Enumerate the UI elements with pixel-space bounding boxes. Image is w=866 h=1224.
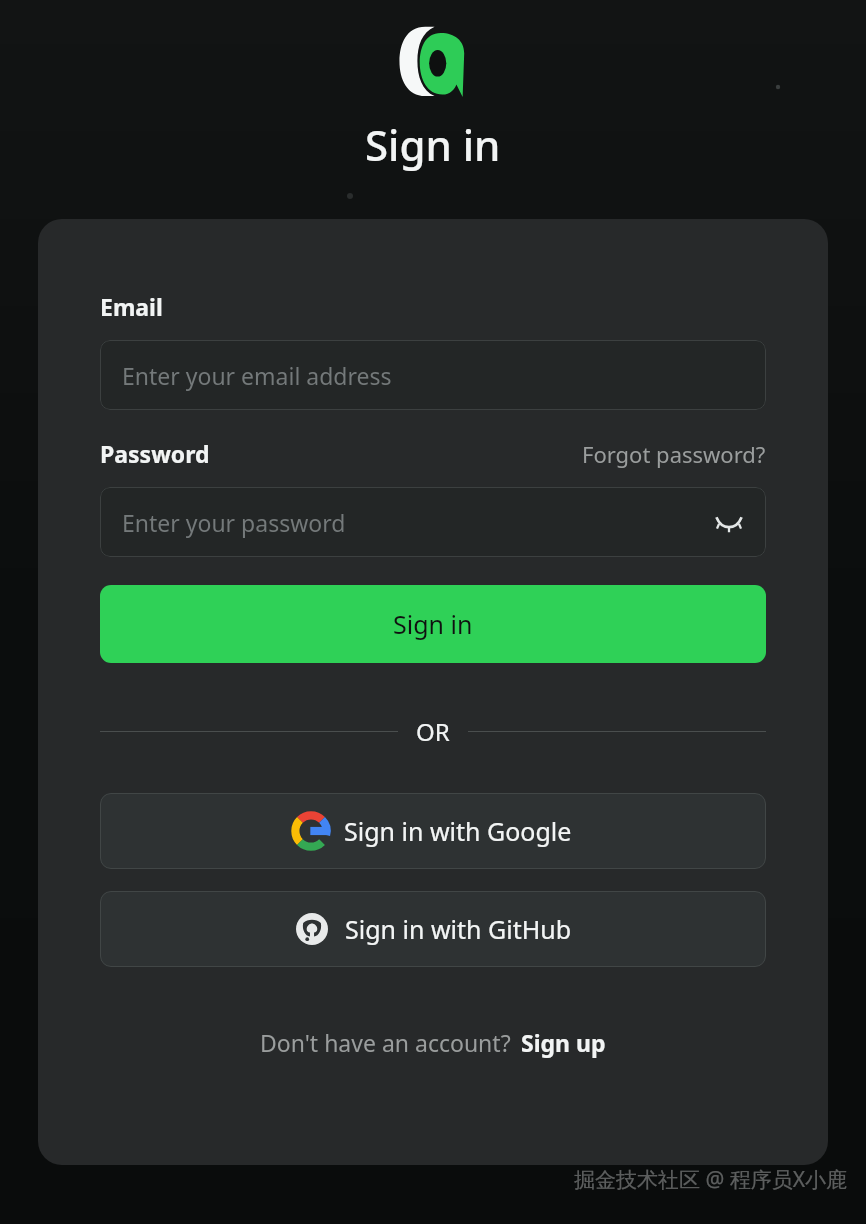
button[interactable]: Sign in with Google	[100, 793, 766, 869]
staticText: Sign in with GitHub	[345, 912, 572, 946]
staticText: Sign in	[393, 607, 473, 641]
staticText: Sign in	[365, 116, 501, 173]
staticText: Enter your email address	[122, 360, 392, 391]
button[interactable]: Show password	[712, 505, 746, 539]
staticText: Sign in with Google	[344, 814, 572, 848]
staticText: Sign up	[521, 1027, 606, 1058]
staticText: Don't have an account?	[260, 1027, 511, 1058]
staticText: Forgot password?	[582, 439, 766, 469]
button[interactable]: Enter your email address	[100, 340, 766, 410]
button[interactable]: Sign up	[521, 1027, 606, 1058]
staticText: Enter your password	[122, 507, 346, 538]
button[interactable]: Forgot password?	[582, 439, 766, 469]
staticText: Password	[100, 438, 210, 469]
staticText: 掘金技术社区 @ 程序员X小鹿	[574, 1165, 848, 1194]
staticText: OR	[416, 715, 450, 748]
button[interactable]: Sign in with GitHub	[100, 891, 766, 967]
button[interactable]: Enter your password	[100, 487, 766, 557]
button[interactable]: Sign in	[100, 585, 766, 663]
staticText: Email	[100, 291, 163, 322]
